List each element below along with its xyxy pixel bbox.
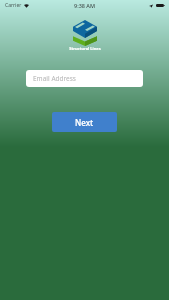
staticText: Structural Lines — [69, 46, 101, 51]
other: Location — [149, 4, 153, 8]
button[interactable]: Next — [52, 112, 117, 132]
other: Battery — [156, 3, 165, 8]
staticText: Email Address — [33, 74, 76, 83]
staticText: Next — [75, 117, 94, 128]
other: Wi-Fi — [24, 4, 29, 8]
staticText: Carrier — [5, 2, 22, 9]
staticText: 9:38 AM — [74, 2, 96, 9]
button[interactable]: Email Address — [26, 70, 143, 87]
